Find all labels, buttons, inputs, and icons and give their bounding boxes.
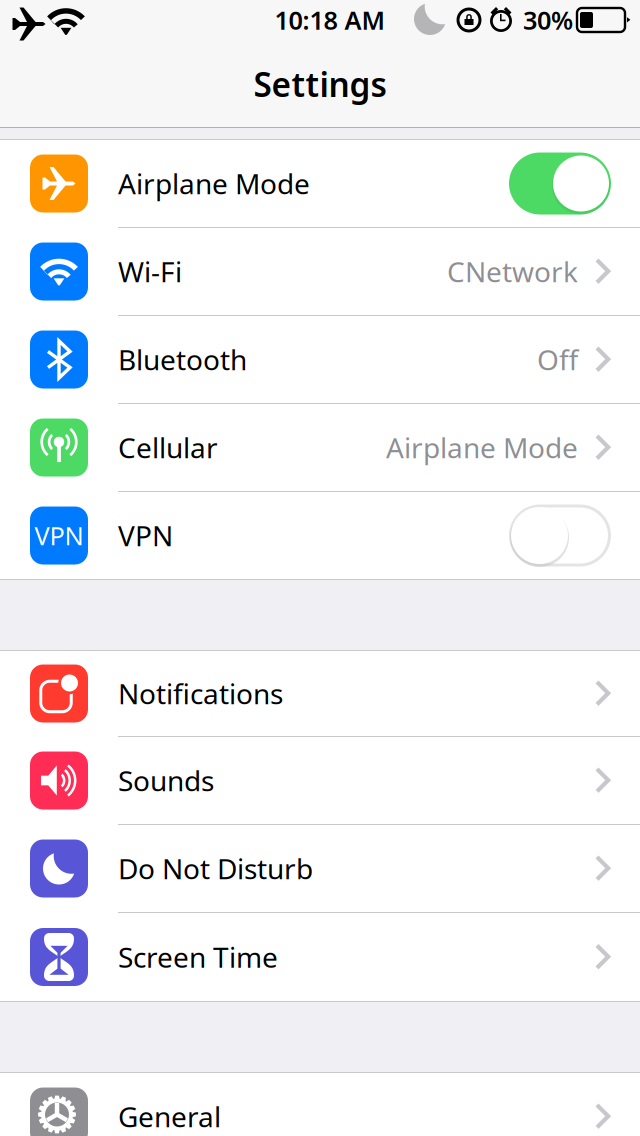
button[interactable]: Wi-Fi (0, 228, 640, 316)
staticText: VPN (118, 517, 173, 554)
staticText: 30% (523, 3, 573, 37)
staticText: Off (537, 341, 578, 378)
staticText: Bluetooth (118, 341, 247, 378)
staticText: Sounds (118, 762, 214, 799)
button[interactable]: Notifications (0, 651, 640, 737)
button[interactable]: Sounds (0, 737, 640, 825)
staticText: Cellular (118, 429, 218, 466)
staticText: 10:18 AM (274, 3, 385, 37)
staticText: Airplane Mode (118, 165, 310, 202)
staticText: Settings (253, 62, 386, 106)
staticText: Wi-Fi (118, 253, 182, 290)
button[interactable]: Cellular (0, 404, 640, 492)
staticText: General (118, 1098, 221, 1135)
staticText: VPN (34, 519, 83, 552)
button[interactable]: Bluetooth (0, 316, 640, 404)
button[interactable]: General (0, 1073, 640, 1136)
button[interactable]: VPN (0, 492, 640, 579)
staticText: Do Not Disturb (118, 850, 313, 887)
button[interactable]: Airplane Mode (0, 140, 640, 228)
button[interactable]: Screen Time (0, 913, 640, 1001)
staticText: Airplane Mode (386, 429, 578, 466)
staticText: Screen Time (118, 938, 278, 976)
staticText: CNetwork (447, 253, 578, 290)
staticText: Notifications (118, 675, 283, 712)
button[interactable]: Do Not Disturb (0, 825, 640, 913)
